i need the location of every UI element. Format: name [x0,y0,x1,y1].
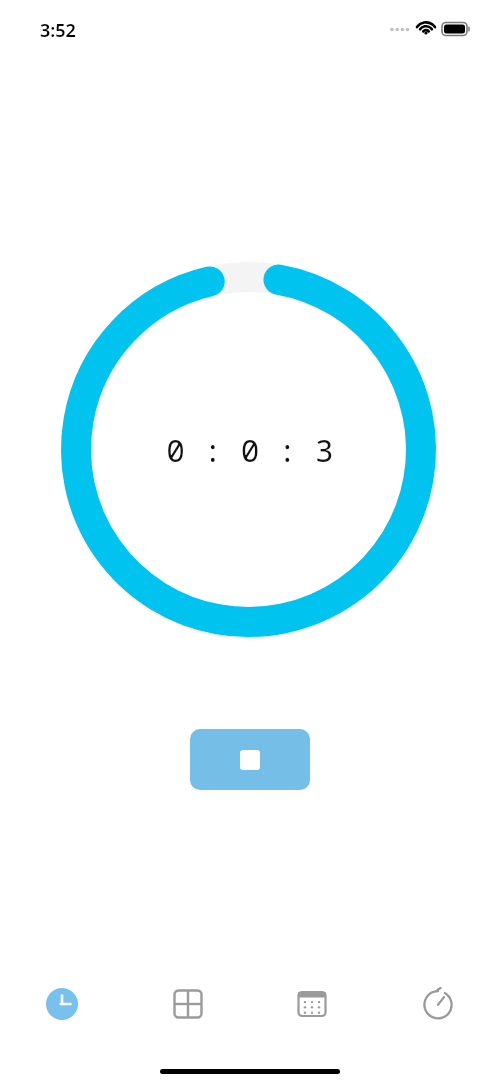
button[interactable]: Stop [190,729,310,790]
staticText: 3:52 [40,18,76,43]
button[interactable]: Calendar [270,982,354,1026]
button[interactable]: Grid [146,982,230,1026]
staticText: 0 : 0 : 3 [166,429,334,471]
button[interactable]: Clock [20,982,104,1026]
button[interactable]: Timer [396,982,480,1026]
